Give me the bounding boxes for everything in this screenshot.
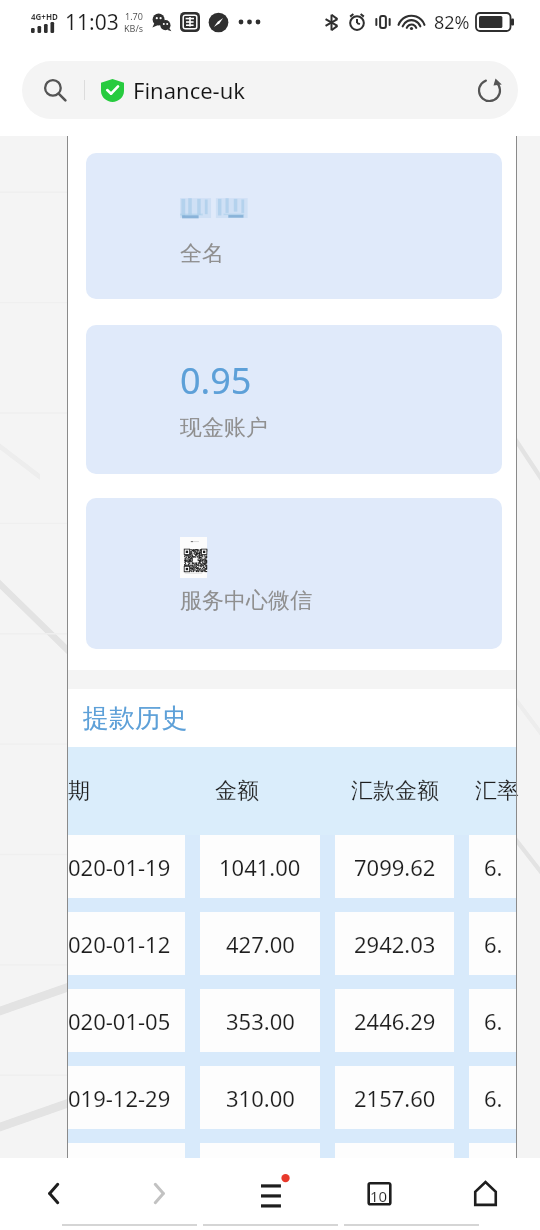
button[interactable]: Menu — [242, 1164, 300, 1222]
button[interactable]: 0.95 — [86, 325, 502, 474]
staticText: 1.70 — [125, 10, 143, 22]
staticText: 汇率 — [475, 777, 519, 805]
staticText: 6. — [484, 852, 503, 882]
staticText: 019-12-29 — [68, 1083, 171, 1113]
staticText: 6. — [484, 929, 503, 959]
staticText: 020-01-12 — [68, 929, 171, 959]
staticText: Finance-uk — [133, 75, 246, 105]
staticText: 服务中心微信 — [180, 587, 312, 615]
staticText: 2446.29 — [354, 1006, 436, 1036]
staticText: 2157.60 — [354, 1083, 436, 1113]
staticText: 现金账户 — [180, 414, 268, 442]
staticText: 2942.03 — [354, 929, 436, 959]
button[interactable]: Refresh — [467, 68, 511, 112]
staticText: 提款历史 — [83, 702, 187, 735]
button[interactable]: Forward — [129, 1164, 187, 1222]
staticText: 427.00 — [226, 929, 295, 959]
staticText: 4G+HD — [31, 11, 58, 22]
staticText: 310.00 — [226, 1083, 295, 1113]
staticText: 金额 — [215, 777, 259, 805]
button[interactable]: Finance-uk — [22, 61, 518, 119]
staticText: KB/s — [124, 22, 144, 34]
button[interactable]: Home — [456, 1164, 514, 1222]
staticText: 全名 — [180, 240, 224, 268]
staticText: 0.95 — [180, 356, 252, 405]
button[interactable]: 服务中心微信 — [86, 498, 502, 649]
staticText: 期 — [68, 777, 90, 805]
staticText: 1041.00 — [219, 852, 301, 882]
staticText: 11:03 — [65, 8, 119, 37]
staticText: 6. — [484, 1006, 503, 1036]
staticText: 10 — [370, 1186, 388, 1206]
staticText: 7099.62 — [354, 852, 436, 882]
staticText: 汇款金额 — [351, 777, 439, 805]
button[interactable]: Back — [25, 1164, 83, 1222]
staticText: 020-01-05 — [68, 1006, 171, 1036]
button[interactable]: 全名 — [86, 153, 502, 299]
staticText: 020-01-19 — [68, 852, 171, 882]
staticText: 6. — [484, 1083, 503, 1113]
staticText: 82% — [434, 10, 470, 35]
staticText: 353.00 — [226, 1006, 295, 1036]
button[interactable]: Tabs — [350, 1164, 408, 1222]
